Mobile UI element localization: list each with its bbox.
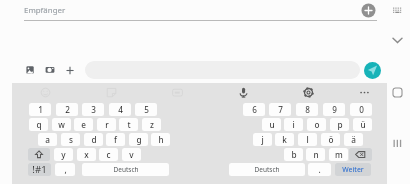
button[interactable]: ,	[55, 163, 75, 176]
button[interactable]: ö	[321, 133, 340, 146]
staticText: v	[129, 149, 134, 160]
staticText: f	[114, 134, 117, 145]
button[interactable]: More	[358, 86, 371, 99]
staticText: e	[81, 119, 86, 130]
button[interactable]: Resize keyboard	[390, 136, 405, 151]
staticText: Weiter	[342, 165, 364, 174]
button[interactable]: 8	[296, 103, 318, 116]
button[interactable]: f	[106, 133, 125, 146]
button[interactable]: m	[329, 148, 348, 161]
button[interactable]: g	[129, 133, 148, 146]
staticText: c	[106, 149, 111, 160]
staticText: 1	[38, 104, 43, 115]
button[interactable]: Keyboard	[390, 5, 405, 17]
button[interactable]: !#1	[28, 163, 51, 176]
staticText: p	[337, 119, 343, 130]
staticText: x	[84, 149, 89, 160]
staticText: 0	[359, 104, 364, 115]
staticText: Empfänger	[24, 5, 66, 16]
button[interactable]: Empfänger	[20, 1, 380, 20]
staticText: g	[136, 134, 142, 145]
button[interactable]: Floating keyboard	[390, 85, 405, 100]
button[interactable]: Emoji	[39, 86, 52, 99]
staticText: i	[292, 119, 295, 130]
staticText: w	[58, 119, 65, 130]
button[interactable]: Add recipient	[361, 3, 376, 18]
staticText: 6	[252, 104, 257, 115]
button[interactable]: b	[284, 148, 303, 161]
button[interactable]: a	[38, 133, 57, 146]
staticText: 7	[278, 104, 283, 115]
staticText: 4	[118, 104, 123, 115]
button[interactable]: u	[262, 118, 281, 131]
button[interactable]: j	[253, 133, 272, 146]
button[interactable]: Send	[364, 62, 381, 79]
staticText: ,	[64, 164, 67, 175]
staticText: Deutsch	[254, 165, 280, 174]
button[interactable]: k	[275, 133, 294, 146]
button[interactable]: Gallery	[24, 64, 36, 76]
button[interactable]: Deutsch	[229, 163, 305, 176]
button[interactable]: q	[29, 118, 48, 131]
button[interactable]: Deutsch	[82, 163, 169, 176]
button[interactable]: t	[119, 118, 138, 131]
button[interactable]: 1	[29, 103, 51, 116]
staticText: y	[61, 149, 66, 160]
button[interactable]: y	[54, 148, 73, 161]
button[interactable]: Stickers	[105, 86, 118, 99]
staticText: r	[105, 119, 109, 130]
staticText: a	[45, 134, 50, 145]
button[interactable]: Shift	[28, 148, 50, 161]
button[interactable]: p	[330, 118, 349, 131]
staticText: .	[318, 164, 321, 175]
button[interactable]: More options	[64, 64, 76, 76]
button[interactable]: 6	[243, 103, 265, 116]
button[interactable]: 4	[109, 103, 131, 116]
button[interactable]: n	[306, 148, 325, 161]
staticText: ä	[351, 134, 356, 145]
button[interactable]: ä	[344, 133, 363, 146]
button[interactable]: Voice input	[237, 86, 250, 99]
button[interactable]: e	[74, 118, 93, 131]
staticText: ö	[328, 134, 334, 145]
staticText: q	[36, 119, 42, 130]
button[interactable]: 2	[56, 103, 78, 116]
button[interactable]: r	[97, 118, 116, 131]
button[interactable]: Weiter	[335, 163, 371, 176]
button[interactable]: Settings	[302, 86, 315, 99]
button[interactable]: c	[99, 148, 118, 161]
button[interactable]: z	[142, 118, 161, 131]
button[interactable]: o	[307, 118, 326, 131]
button[interactable]: Backspace	[349, 148, 372, 161]
button[interactable]: x	[77, 148, 96, 161]
staticText: Deutsch	[113, 165, 139, 174]
button[interactable]: Collapse	[390, 34, 405, 46]
staticText: d	[91, 134, 97, 145]
button[interactable]: 9	[323, 103, 345, 116]
button[interactable]: 5	[135, 103, 157, 116]
button[interactable]: w	[52, 118, 71, 131]
staticText: t	[127, 119, 131, 130]
staticText: !#1	[32, 163, 47, 176]
staticText: ü	[360, 119, 366, 130]
button[interactable]: l	[298, 133, 317, 146]
staticText: h	[158, 134, 164, 145]
button[interactable]: Camera	[44, 64, 56, 76]
staticText: m	[335, 149, 343, 160]
button[interactable]: v	[122, 148, 141, 161]
button[interactable]: h	[151, 133, 170, 146]
button[interactable]: s	[61, 133, 80, 146]
staticText: 3	[91, 104, 96, 115]
button[interactable]: i	[284, 118, 303, 131]
button[interactable]: 0	[350, 103, 372, 116]
staticText: j	[261, 134, 264, 145]
staticText: n	[313, 149, 319, 160]
button[interactable]: .	[308, 163, 331, 176]
button[interactable]: d	[84, 133, 103, 146]
button[interactable]: 7	[269, 103, 291, 116]
staticText: 2	[65, 104, 70, 115]
button[interactable]: 3	[82, 103, 104, 116]
button[interactable]: GIF	[171, 86, 184, 99]
button[interactable]: ü	[353, 118, 372, 131]
